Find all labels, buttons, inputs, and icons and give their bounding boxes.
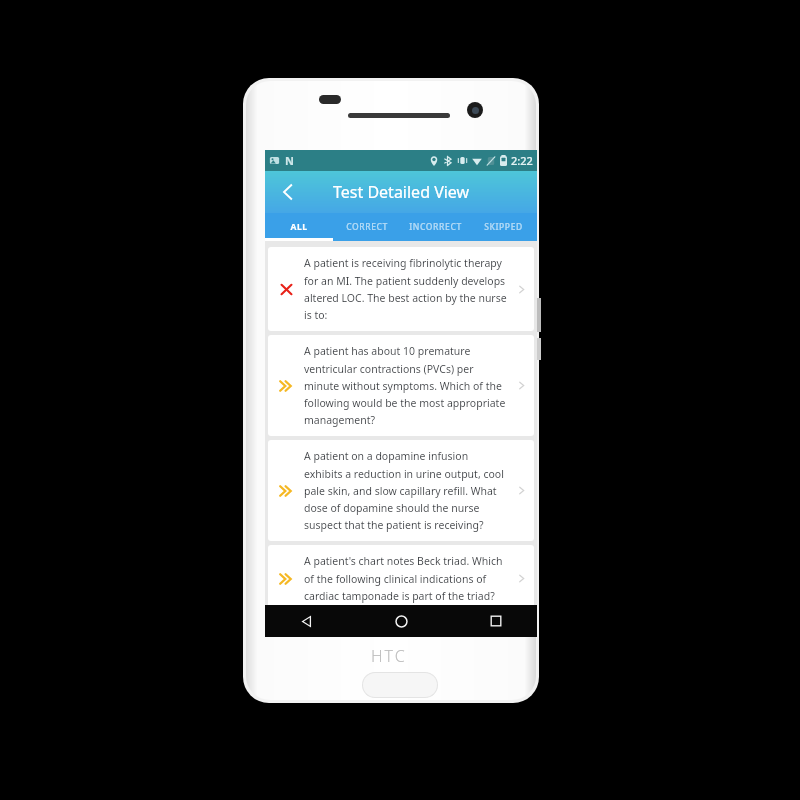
staticText: Which of the following is the potential … [304, 625, 508, 628]
staticText: A patient on a dopamine infusion exhibit… [304, 449, 508, 532]
staticText: ALL [290, 221, 308, 233]
button[interactable]: A patient is receiving fibrinolytic ther… [268, 247, 534, 331]
button[interactable]: A patient has about 10 premature ventric… [268, 335, 534, 436]
button[interactable]: A patient on a dopamine infusion exhibit… [268, 440, 534, 541]
button[interactable]: Recent apps [481, 606, 511, 636]
staticText: CORRECT [346, 221, 388, 233]
staticText: 2:22 [511, 153, 533, 168]
button[interactable]: A patient's chart notes Beck triad. Whic… [268, 545, 534, 612]
button[interactable]: ALL [265, 213, 333, 241]
button[interactable]: Which of the following is the potential … [268, 616, 534, 637]
staticText: SKIPPED [484, 221, 523, 233]
button[interactable]: CORRECT [333, 213, 401, 241]
staticText: N [285, 153, 294, 168]
button[interactable]: INCORRECT [401, 213, 469, 241]
button[interactable]: Back [271, 175, 305, 209]
button[interactable]: Home [386, 606, 416, 636]
staticText: A patient is receiving fibrinolytic ther… [304, 256, 508, 322]
staticText: Test Detailed View [333, 181, 470, 203]
staticText: INCORRECT [409, 221, 462, 233]
staticText: HTC [371, 645, 407, 667]
staticText: A patient's chart notes Beck triad. Whic… [304, 554, 508, 603]
button[interactable]: Back [291, 606, 321, 636]
button[interactable]: SKIPPED [469, 213, 537, 241]
staticText: A patient has about 10 premature ventric… [304, 344, 508, 427]
